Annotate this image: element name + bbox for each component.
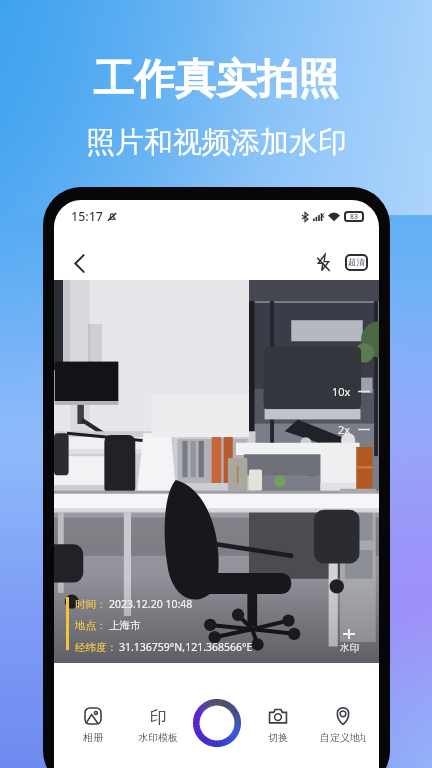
button[interactable]: Custom address: [320, 707, 366, 744]
staticText: 水印模板: [138, 731, 178, 744]
staticText: 83: [350, 212, 359, 222]
staticText: 2x: [338, 422, 351, 437]
staticText: 10x: [332, 384, 351, 399]
staticText: 工作真实拍照: [93, 54, 339, 106]
button[interactable]: 印: [135, 707, 181, 744]
staticText: 经纬度：: [75, 641, 117, 654]
button[interactable]: Shutter: [193, 699, 241, 747]
staticText: 时间：: [75, 598, 107, 611]
staticText: 印: [150, 707, 167, 725]
staticText: 切换: [268, 731, 288, 744]
staticText: 2023.12.20 10:48: [109, 597, 193, 611]
staticText: 照片和视频添加水印: [86, 124, 347, 161]
button[interactable]: Album: [70, 707, 116, 744]
staticText: 31.136759°N,121.368566°E: [119, 640, 253, 654]
staticText: 上海市: [109, 619, 141, 632]
button[interactable]: Add watermark: [335, 629, 363, 654]
button[interactable]: Flash off: [310, 249, 336, 275]
button[interactable]: 超清: [345, 254, 368, 271]
staticText: 自定义地址: [320, 731, 366, 744]
staticText: 相册: [83, 731, 103, 744]
staticText: 15:17: [71, 208, 104, 225]
staticText: 水印: [340, 642, 359, 654]
staticText: 超清: [348, 257, 365, 268]
button[interactable]: Switch camera: [255, 707, 301, 744]
button[interactable]: Back: [62, 246, 96, 280]
staticText: 地点：: [75, 619, 107, 632]
